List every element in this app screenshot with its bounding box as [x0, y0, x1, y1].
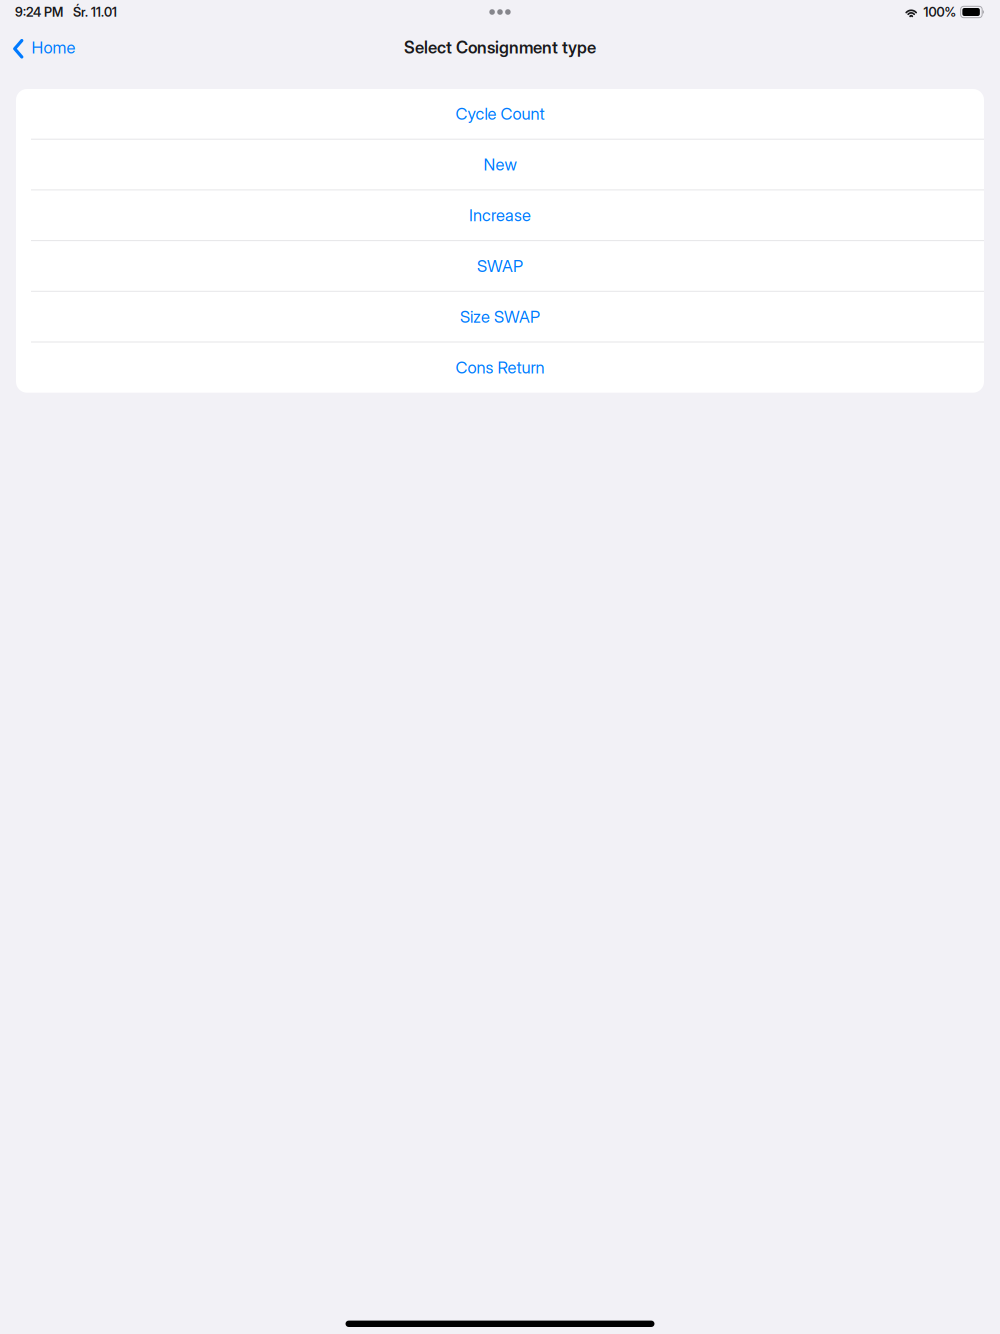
staticText: Size SWAP — [460, 307, 540, 327]
button[interactable]: Cons Return — [16, 342, 984, 393]
staticText: New — [483, 154, 516, 174]
staticText: Home — [31, 37, 75, 57]
button[interactable]: Back to Home — [0, 29, 85, 66]
staticText: 100% — [923, 4, 956, 20]
staticText: Cons Return — [455, 358, 544, 378]
staticText: Increase — [469, 205, 531, 225]
button[interactable]: Increase — [16, 190, 984, 241]
staticText: Cycle Count — [455, 104, 544, 124]
staticText: Śr. 11.01 — [73, 4, 117, 20]
staticText: Select Consignment type — [404, 37, 596, 58]
button[interactable]: Size SWAP — [16, 292, 984, 342]
staticText: SWAP — [477, 256, 523, 276]
button[interactable]: New — [16, 140, 984, 190]
button[interactable]: SWAP — [16, 241, 984, 292]
staticText: 9:24 PM — [15, 4, 63, 20]
button[interactable]: Cycle Count — [16, 89, 984, 140]
